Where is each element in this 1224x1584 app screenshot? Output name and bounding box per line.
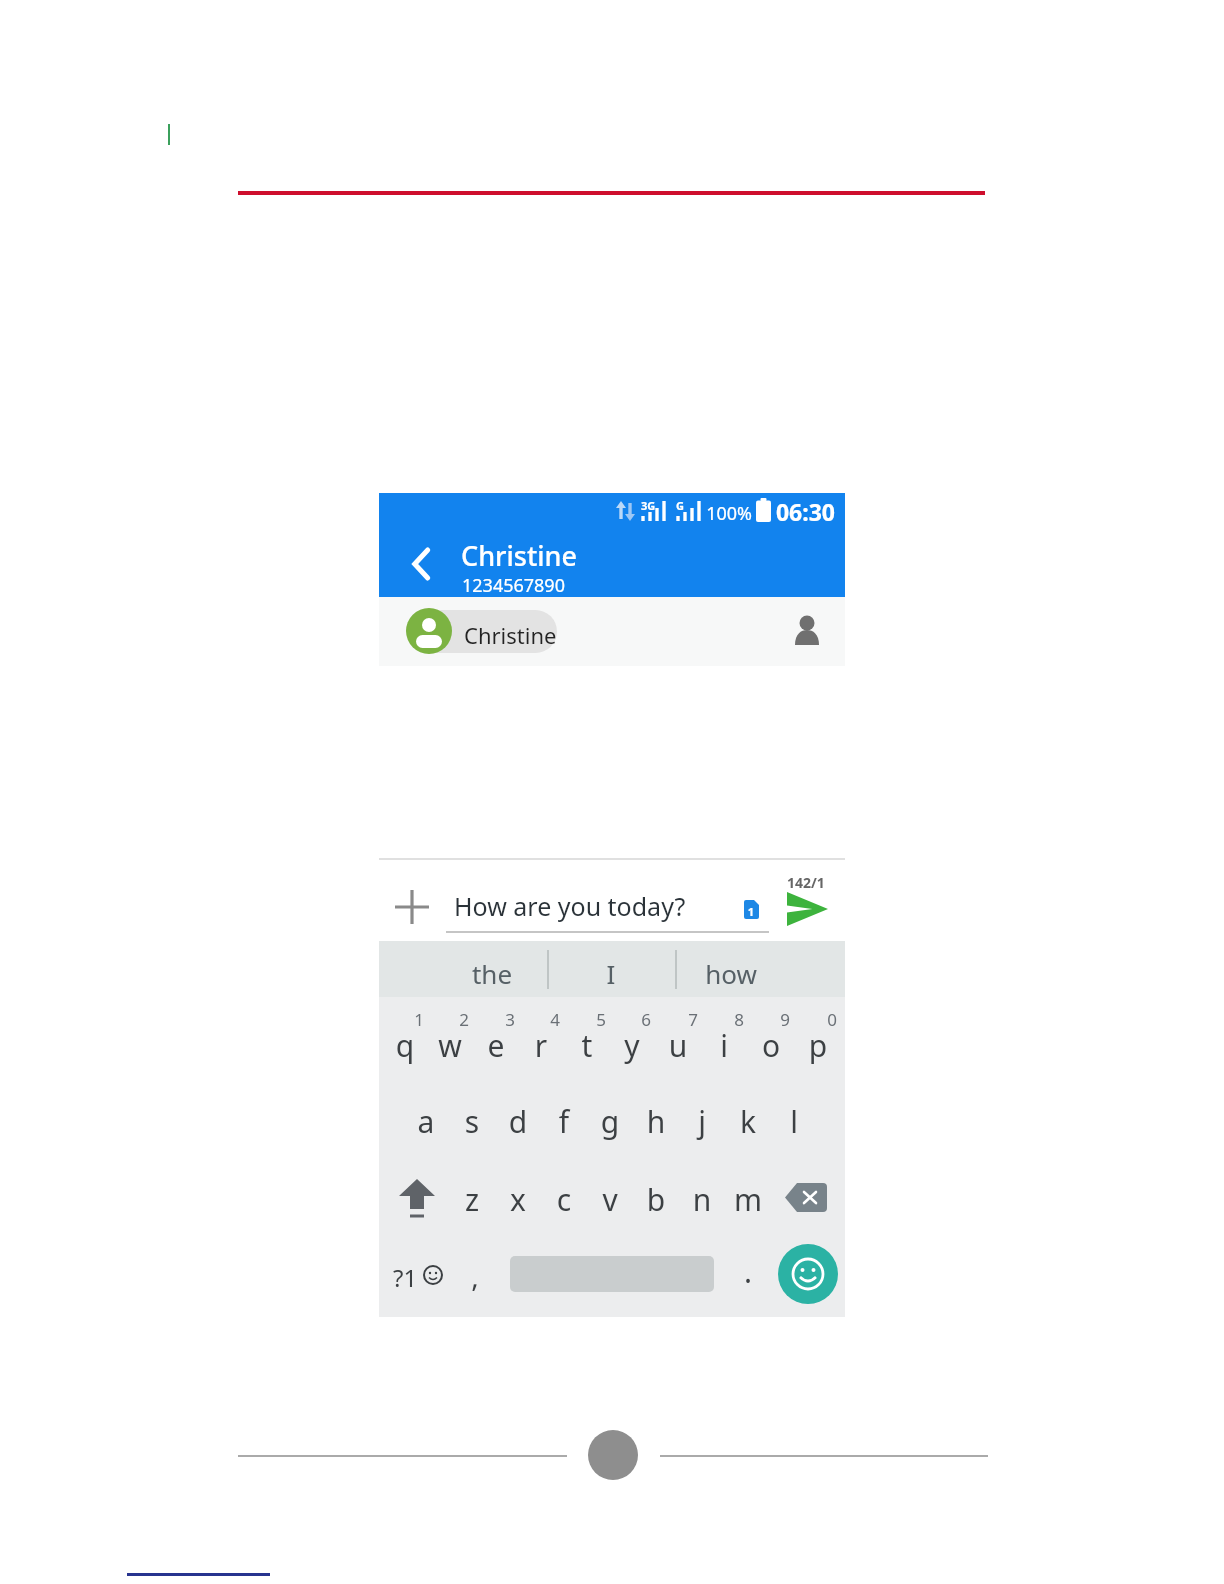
button[interactable] xyxy=(785,1183,827,1212)
staticText: 100% xyxy=(692,501,752,526)
staticText: 1 xyxy=(691,904,811,919)
button[interactable]: t xyxy=(557,1025,617,1071)
button[interactable]: g xyxy=(580,1101,640,1147)
button[interactable]: x xyxy=(488,1179,548,1225)
button[interactable]: l xyxy=(764,1101,824,1147)
staticText: 142/1 xyxy=(787,873,825,892)
staticText: How are you today? xyxy=(454,889,686,923)
staticText: 7 xyxy=(633,1008,753,1031)
staticText: how xyxy=(671,956,791,991)
staticText: 1 xyxy=(359,1008,479,1031)
staticText: 6 xyxy=(586,1008,706,1031)
button[interactable]: z xyxy=(442,1179,502,1225)
button[interactable]: y xyxy=(602,1025,662,1071)
staticText: 0 xyxy=(772,1008,892,1031)
button[interactable]: o xyxy=(741,1025,801,1071)
button[interactable]: v xyxy=(580,1179,640,1225)
staticText: Christine xyxy=(461,537,577,574)
staticText: G xyxy=(676,498,684,513)
button[interactable]: n xyxy=(672,1179,732,1225)
button[interactable]: u xyxy=(648,1025,708,1071)
staticText: 8 xyxy=(679,1008,799,1031)
button[interactable]: j xyxy=(672,1101,732,1147)
staticText: 1234567890 xyxy=(462,573,565,598)
staticText: 9 xyxy=(725,1008,845,1031)
staticText: 2 xyxy=(404,1008,524,1031)
staticText: the xyxy=(432,956,552,991)
button[interactable]: i xyxy=(694,1025,754,1071)
button[interactable]: e xyxy=(466,1025,526,1071)
button[interactable]: a xyxy=(396,1101,456,1147)
staticText: ?1 xyxy=(393,1261,418,1294)
button[interactable]: c xyxy=(534,1179,594,1225)
button[interactable]: f xyxy=(534,1101,594,1147)
button[interactable]: b xyxy=(626,1179,686,1225)
button[interactable]: s xyxy=(442,1101,502,1147)
button[interactable]: k xyxy=(718,1101,778,1147)
button[interactable]: w xyxy=(420,1025,480,1071)
button[interactable] xyxy=(395,890,429,924)
button[interactable]: p xyxy=(788,1025,848,1071)
button[interactable] xyxy=(409,548,435,580)
staticText: 5 xyxy=(541,1008,661,1031)
staticText: 3 xyxy=(450,1008,570,1031)
staticText: I xyxy=(551,956,671,991)
staticText: . xyxy=(688,1251,808,1292)
button[interactable] xyxy=(787,892,828,926)
button[interactable] xyxy=(411,610,557,653)
staticText: , xyxy=(415,1257,535,1295)
button[interactable]: d xyxy=(488,1101,548,1147)
button[interactable] xyxy=(778,1244,838,1304)
button[interactable] xyxy=(793,615,821,645)
staticText: Christine xyxy=(464,620,557,650)
button[interactable]: r xyxy=(511,1025,571,1071)
button[interactable]: q xyxy=(375,1025,435,1071)
button[interactable] xyxy=(399,1179,435,1219)
button[interactable]: m xyxy=(718,1179,778,1225)
staticText: 06:30 xyxy=(771,496,835,527)
staticText: 4 xyxy=(495,1008,615,1031)
button[interactable] xyxy=(423,1265,443,1285)
staticText: 3G xyxy=(641,498,656,513)
button[interactable]: h xyxy=(626,1101,686,1147)
